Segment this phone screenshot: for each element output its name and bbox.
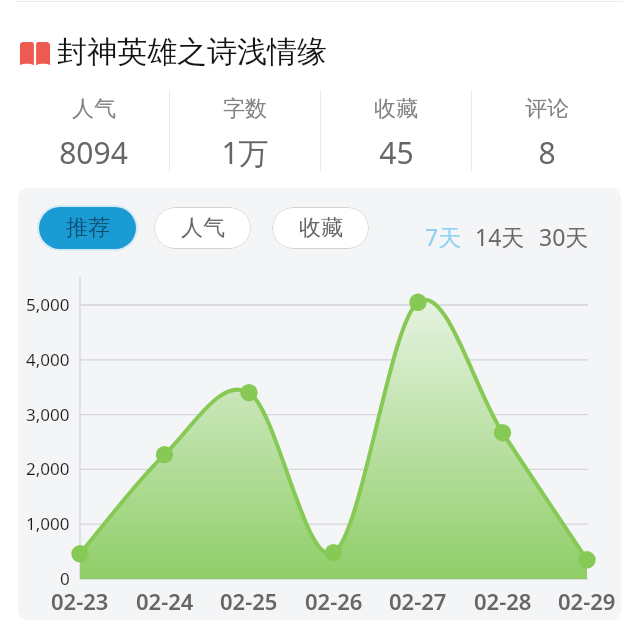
staticText: 02-27 [389, 586, 447, 616]
button[interactable]: 人气 [154, 207, 251, 249]
staticText: 8094 [59, 132, 128, 172]
staticText: 02-23 [51, 586, 109, 616]
staticText: 评论 [525, 95, 569, 123]
staticText: 30天 [539, 221, 589, 252]
staticText: 8 [538, 132, 556, 172]
staticText: 02-26 [305, 586, 363, 616]
button[interactable]: 字数 [170, 90, 320, 172]
button[interactable]: 7天 [425, 217, 462, 256]
staticText: 02-25 [220, 586, 278, 616]
staticText: 2,000 [26, 457, 70, 480]
staticText: 3,000 [26, 403, 70, 426]
staticText: 0 [60, 567, 70, 590]
staticText: 4,000 [26, 348, 70, 371]
staticText: 7天 [425, 221, 462, 252]
staticText: 人气 [181, 214, 225, 242]
button[interactable]: 收藏 [321, 90, 471, 172]
button[interactable]: 收藏 [272, 207, 369, 249]
staticText: 45 [379, 132, 414, 172]
staticText: 字数 [223, 95, 267, 123]
staticText: 02-24 [136, 586, 194, 616]
staticText: 14天 [475, 221, 525, 252]
staticText: 收藏 [299, 214, 343, 242]
staticText: 推荐 [66, 214, 110, 242]
staticText: 1,000 [26, 512, 70, 535]
staticText: 封神英雄之诗浅情缘 [57, 33, 327, 71]
staticText: 02-29 [558, 586, 616, 616]
button[interactable]: 30天 [539, 217, 589, 256]
staticText: 02-28 [474, 586, 532, 616]
button[interactable]: 人气 [18, 90, 169, 172]
staticText: 1万 [221, 132, 269, 172]
button[interactable]: 14天 [475, 217, 525, 256]
staticText: 人气 [72, 95, 116, 123]
button[interactable]: 评论 [472, 90, 622, 172]
staticText: 5,000 [26, 293, 70, 316]
staticText: 收藏 [374, 95, 418, 123]
button[interactable]: 推荐 [37, 205, 138, 251]
other: Book [19, 40, 51, 66]
